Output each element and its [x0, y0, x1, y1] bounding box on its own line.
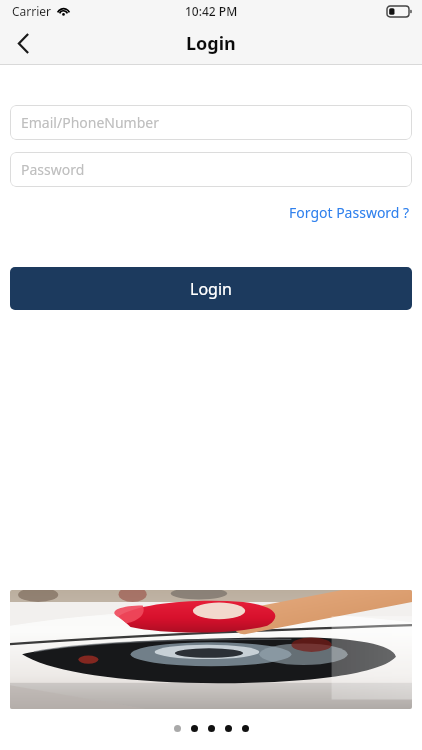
button[interactable]: Car care promotional image [10, 590, 412, 709]
staticText: Login [190, 278, 232, 300]
staticText: Login [186, 31, 236, 56]
staticText: Password [21, 160, 85, 179]
button[interactable] [208, 725, 215, 732]
button[interactable]: Password [10, 152, 412, 187]
button[interactable] [191, 725, 198, 732]
button[interactable]: Back [0, 22, 46, 65]
button[interactable]: Email/PhoneNumber [10, 105, 412, 140]
button[interactable] [225, 725, 232, 732]
staticText: Email/PhoneNumber [21, 113, 159, 132]
button[interactable]: Login [10, 267, 412, 310]
staticText: Carrier [12, 3, 52, 19]
button[interactable]: Forgot Password ? [287, 201, 412, 224]
button[interactable] [174, 725, 181, 732]
button[interactable] [242, 725, 249, 732]
staticText: 10:42 PM [185, 3, 238, 19]
staticText: Forgot Password ? [289, 203, 410, 222]
